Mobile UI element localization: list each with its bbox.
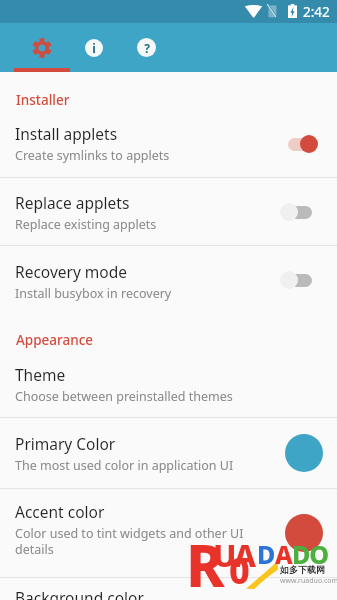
staticText: 如多下载网 — [280, 564, 325, 575]
staticText: A — [275, 537, 292, 571]
staticText: A — [234, 534, 256, 576]
button[interactable]: Accent color — [0, 489, 337, 577]
staticText: R — [186, 525, 225, 600]
button[interactable]: Info — [75, 23, 112, 72]
staticText: Accent color — [15, 501, 105, 522]
staticText: U — [213, 534, 237, 576]
button[interactable]: Primary Color — [0, 418, 337, 488]
staticText: Replace applets — [15, 192, 130, 213]
staticText: i — [92, 40, 96, 56]
button[interactable]: Help — [128, 23, 165, 72]
staticText: Install busybox in recovery — [15, 285, 172, 302]
button[interactable]: Install applets — [0, 110, 337, 177]
staticText: The most used color in application UI — [15, 457, 234, 474]
staticText: Installer — [16, 91, 70, 109]
staticText: Background color — [15, 587, 144, 600]
button[interactable]: Settings — [14, 23, 69, 72]
button[interactable]: Background color — [0, 578, 337, 600]
staticText: Theme — [15, 364, 66, 385]
staticText: Replace existing applets — [15, 216, 157, 233]
staticText: D — [257, 537, 275, 571]
staticText: Color used to tint widgets and other UI … — [15, 525, 265, 558]
staticText: Primary Color — [15, 433, 116, 454]
staticText: Recovery mode — [15, 261, 127, 282]
staticText: ? — [144, 40, 150, 56]
staticText: Install applets — [15, 123, 118, 144]
staticText: Appearance — [16, 331, 94, 349]
button[interactable]: Theme — [0, 355, 337, 417]
staticText: Choose between preinstalled themes — [15, 388, 233, 405]
staticText: 2:42 — [303, 3, 330, 21]
staticText: 0 — [229, 546, 250, 595]
staticText: www.ruaduo.com — [280, 576, 337, 586]
staticText: DO — [292, 537, 329, 571]
button[interactable]: Recovery mode — [0, 246, 337, 314]
button[interactable]: Replace applets — [0, 178, 337, 245]
staticText: Create symlinks to applets — [15, 147, 170, 164]
